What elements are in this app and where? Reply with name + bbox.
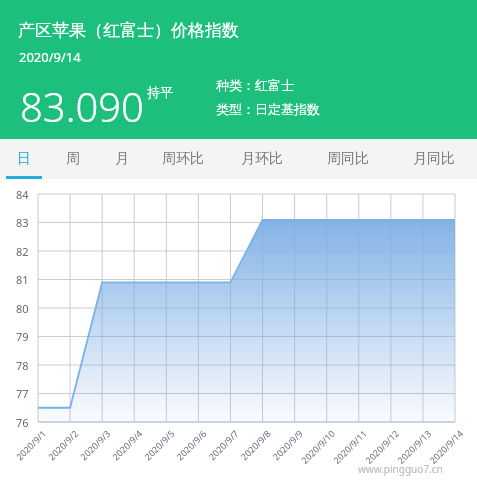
staticText: 周环比 [162, 150, 204, 168]
staticText: 日 [17, 150, 31, 168]
staticText: 月环比 [241, 150, 283, 168]
staticText: 种类：红富士 [216, 77, 294, 93]
button[interactable]: 周环比 [146, 139, 219, 179]
staticText: 周同比 [327, 150, 369, 168]
staticText: 周 [66, 150, 80, 168]
button[interactable]: 周同比 [305, 139, 391, 179]
button[interactable]: 月 [97, 139, 146, 179]
staticText: 2020/9/14 [19, 48, 81, 66]
button[interactable]: 月同比 [391, 139, 477, 179]
staticText: 月同比 [413, 150, 455, 168]
staticText: 持平 [147, 84, 173, 100]
button[interactable]: 月环比 [219, 139, 305, 179]
button[interactable]: 周 [48, 139, 97, 179]
staticText: 产区苹果（红富士）价格指数 [18, 20, 239, 41]
staticText: 类型：日定基指数 [216, 101, 320, 117]
staticText: 月 [115, 150, 129, 168]
staticText: 83.090 [20, 79, 144, 133]
button[interactable]: 日 [0, 139, 48, 179]
